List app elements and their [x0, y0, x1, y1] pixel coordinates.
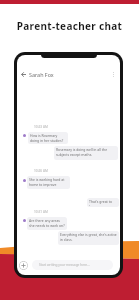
- button[interactable]: More options: [110, 71, 117, 78]
- button[interactable]: Rosemary is doing well in all the subjec…: [54, 146, 118, 160]
- staticText: Start writing your message here...: [39, 263, 90, 267]
- staticText: 10:31 AM: [34, 210, 48, 214]
- button[interactable]: Add attachment: [19, 261, 28, 270]
- button[interactable]: Start writing your message here...: [32, 260, 113, 270]
- staticText: That's great to hear.: [89, 199, 117, 206]
- staticText: 10:26 AM: [34, 169, 48, 173]
- staticText: How is Rosemary doing in her studies?: [30, 133, 66, 143]
- staticText: 10:23 AM: [34, 125, 48, 129]
- staticText: Are there any areas she needs to work on…: [29, 218, 65, 228]
- button[interactable]: Back: [21, 68, 117, 80]
- staticText: Everything else is great, she's active i…: [60, 232, 117, 242]
- staticText: Parent-teacher chat: [0, 19, 139, 33]
- staticText: Rosemary is doing well in all the subjec…: [56, 147, 116, 157]
- staticText: Sarah Fox: [29, 71, 54, 78]
- button[interactable]: That's great to hear.: [87, 198, 119, 207]
- other: Back: [21, 72, 26, 77]
- button[interactable]: Everything else is great, she's active i…: [58, 231, 119, 245]
- button[interactable]: Are there any areas she needs to work on…: [27, 217, 67, 230]
- button[interactable]: How is Rosemary doing in her studies?: [28, 132, 68, 144]
- button[interactable]: She is working hard at home to improve m…: [27, 176, 70, 189]
- staticText: She is working hard at home to improve m…: [29, 177, 68, 188]
